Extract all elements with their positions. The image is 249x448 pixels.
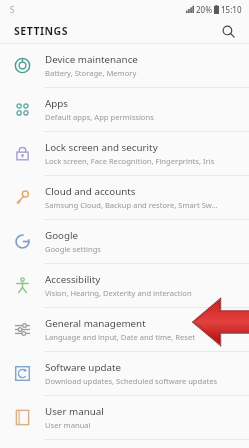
- button[interactable]: Device maintenance: [0, 44, 249, 87]
- staticText: User manual: [45, 405, 104, 418]
- staticText: Default apps, App permissions: [45, 112, 154, 122]
- staticText: Lock screen, Face Recognition, Fingerpri…: [45, 156, 215, 166]
- staticText: Apps: [45, 97, 69, 110]
- staticText: User manual: [45, 420, 91, 430]
- staticText: Cloud and accounts: [45, 185, 136, 198]
- staticText: Google: [45, 229, 79, 242]
- button[interactable]: Lock screen and security: [0, 132, 249, 175]
- staticText: Battery, Storage, Memory: [45, 68, 137, 78]
- staticText: General management: [45, 317, 146, 330]
- button[interactable]: General management: [0, 308, 249, 351]
- staticText: Lock screen and security: [45, 141, 158, 154]
- staticText: Software update: [45, 361, 121, 374]
- staticText: Samsung Cloud, Backup and restore, Smart…: [45, 200, 218, 210]
- button[interactable]: Apps: [0, 88, 249, 131]
- staticText: SETTINGS: [14, 24, 69, 38]
- staticText: 15:10: [221, 4, 242, 15]
- button[interactable]: Software update: [0, 352, 249, 395]
- staticText: Language and input, Date and time, Reset: [45, 332, 196, 342]
- staticText: Download updates, Scheduled software upd…: [45, 376, 218, 386]
- staticText: 20%: [196, 4, 212, 15]
- staticText: Accessibility: [45, 273, 101, 286]
- button[interactable]: Google: [0, 220, 249, 263]
- staticText: Vision, Hearing, Dexterity and interacti…: [45, 288, 192, 298]
- button[interactable]: Cloud and accounts: [0, 176, 249, 219]
- staticText: Device maintenance: [45, 53, 138, 66]
- button[interactable]: User manual: [0, 396, 249, 439]
- staticText: S: [10, 4, 15, 15]
- staticText: Google settings: [45, 244, 101, 254]
- button[interactable]: Accessibility: [0, 264, 249, 307]
- button[interactable]: Search: [217, 20, 239, 42]
